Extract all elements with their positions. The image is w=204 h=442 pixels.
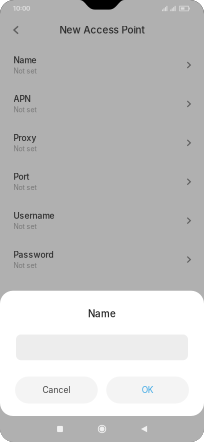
button[interactable]: Recent apps bbox=[39, 416, 81, 442]
staticText: 10:00 bbox=[13, 5, 30, 12]
staticText: Port bbox=[13, 172, 29, 182]
button[interactable]: APN bbox=[0, 84, 204, 123]
staticText: OK bbox=[142, 385, 154, 395]
staticText: Name bbox=[13, 55, 36, 65]
button[interactable]: Back bbox=[123, 416, 165, 442]
button[interactable]: OK bbox=[106, 376, 189, 403]
staticText: Not set bbox=[13, 183, 36, 192]
button[interactable]: Back bbox=[4, 19, 28, 41]
button[interactable]: Password bbox=[0, 240, 204, 279]
button[interactable]: Home bbox=[81, 416, 123, 442]
button[interactable]: Proxy bbox=[0, 123, 204, 162]
staticText: Not set bbox=[13, 67, 36, 75]
staticText: Cancel bbox=[42, 385, 70, 395]
staticText: Not set bbox=[13, 144, 36, 153]
staticText: Not set bbox=[13, 222, 36, 231]
button[interactable]: Cancel bbox=[15, 376, 98, 403]
button[interactable]: Username bbox=[0, 201, 204, 240]
button[interactable]: Port bbox=[0, 162, 204, 201]
staticText: Name bbox=[88, 308, 116, 319]
staticText: Not set bbox=[13, 106, 36, 114]
staticText: Username bbox=[13, 211, 54, 221]
staticText: Not set bbox=[13, 261, 36, 270]
staticText: New Access Point bbox=[59, 24, 144, 36]
staticText: Password bbox=[13, 249, 53, 260]
button[interactable]: Name bbox=[0, 46, 204, 84]
staticText: APN bbox=[13, 94, 30, 104]
staticText: Proxy bbox=[13, 133, 36, 143]
